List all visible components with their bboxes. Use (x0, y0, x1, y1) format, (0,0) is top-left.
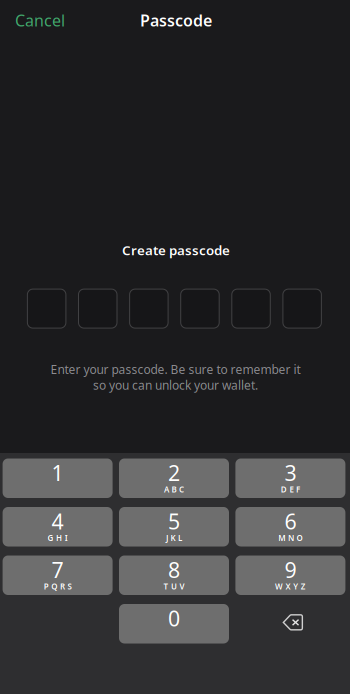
staticText: 8 (168, 556, 180, 584)
staticText: C (179, 484, 184, 495)
staticText: 9 (284, 556, 296, 584)
staticText: 5 (168, 507, 180, 535)
staticText: M (278, 533, 285, 543)
button[interactable]: 1 (3, 458, 113, 498)
staticText: 1 (52, 459, 64, 487)
staticText: U (171, 581, 177, 592)
staticText: Passcode (140, 10, 212, 31)
staticText: X (286, 581, 291, 592)
staticText: Z (301, 581, 306, 592)
staticText: 4 (52, 507, 64, 535)
staticText: so you can unlock your wallet. (93, 377, 258, 393)
staticText: W (275, 581, 283, 592)
button[interactable]: 3 (235, 458, 345, 498)
button[interactable]: 2 (119, 458, 229, 498)
staticText: 6 (284, 507, 296, 535)
staticText: 7 (52, 556, 64, 584)
staticText: B (171, 484, 176, 495)
staticText: A (164, 484, 169, 495)
staticText: J (166, 533, 168, 543)
staticText: V (180, 581, 185, 592)
staticText: N (288, 533, 294, 543)
staticText: E (289, 484, 293, 495)
staticText: 3 (284, 459, 296, 487)
staticText: P (44, 581, 49, 592)
button[interactable]: 6 (235, 507, 345, 546)
staticText: R (60, 581, 65, 592)
button[interactable]: Cancel (5, 3, 75, 38)
staticText: 0 (168, 604, 180, 632)
staticText: G (47, 533, 53, 543)
staticText: Enter your passcode. Be sure to remember… (50, 361, 300, 377)
staticText: H (56, 533, 62, 543)
staticText: F (296, 484, 300, 495)
staticText: 2 (168, 459, 180, 487)
button[interactable]: 9 (235, 555, 345, 595)
staticText: Y (293, 581, 298, 592)
staticText: K (170, 533, 175, 543)
staticText: Q (51, 581, 57, 592)
staticText: I (65, 533, 68, 543)
button[interactable]: 5 (119, 507, 229, 546)
staticText: Create passcode (122, 241, 230, 259)
staticText: D (281, 484, 287, 495)
staticText: L (178, 533, 182, 543)
staticText: O (296, 533, 302, 543)
button[interactable]: 0 (119, 604, 229, 643)
button[interactable]: 7 (3, 555, 113, 595)
staticText: Cancel (15, 10, 65, 31)
button[interactable]: 4 (3, 507, 113, 546)
button[interactable]: Delete (235, 604, 345, 643)
staticText: S (67, 581, 71, 592)
staticText: T (163, 581, 168, 592)
button[interactable]: 8 (119, 555, 229, 595)
